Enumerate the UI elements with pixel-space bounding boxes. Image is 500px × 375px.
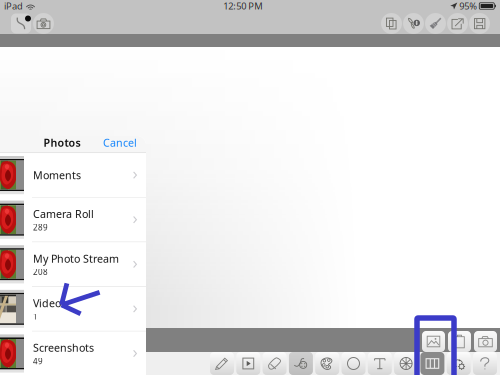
button[interactable]: Help — [473, 352, 497, 375]
button[interactable]: Palette — [315, 352, 339, 375]
staticText: 289 — [33, 222, 48, 233]
button[interactable]: Moments — [0, 153, 146, 197]
button[interactable]: Camera — [33, 13, 54, 34]
button[interactable]: Duplicate — [381, 13, 402, 34]
button[interactable]: Share — [447, 13, 468, 34]
staticText: 1 — [33, 311, 38, 322]
staticText: 95% — [459, 0, 477, 12]
button[interactable]: Lasso — [289, 352, 313, 375]
button[interactable]: Shape — [236, 352, 260, 375]
staticText: Moments — [33, 168, 81, 182]
button[interactable]: Take photo — [474, 331, 497, 352]
button[interactable]: Videos — [0, 287, 146, 331]
button[interactable]: Brush — [425, 13, 446, 34]
button[interactable]: Insert image — [420, 352, 444, 375]
staticText: Screenshots — [33, 341, 94, 355]
staticText: Videos — [33, 296, 66, 310]
button[interactable]: Add pin — [403, 13, 424, 34]
button[interactable]: My Photo Stream — [0, 242, 146, 286]
staticText: 49 — [33, 356, 43, 366]
button[interactable]: Paste — [448, 331, 471, 352]
staticText: iPad — [4, 0, 23, 12]
button[interactable]: Photo settings — [447, 352, 471, 375]
button[interactable]: Undo — [11, 13, 31, 33]
button[interactable]: Pencil — [210, 352, 234, 375]
staticText: 208 — [33, 267, 48, 277]
button[interactable]: Photo library — [422, 331, 445, 352]
button[interactable]: Screenshots — [0, 331, 146, 375]
button[interactable]: Text — [368, 352, 392, 375]
button[interactable]: Ellipse — [341, 352, 365, 375]
staticText: My Photo Stream — [33, 251, 119, 266]
staticText: Photos — [43, 135, 80, 150]
button[interactable]: Camera Roll — [0, 198, 146, 242]
staticText: Camera Roll — [33, 207, 94, 221]
button[interactable]: Eraser — [263, 352, 287, 375]
staticText: Cancel — [103, 135, 137, 150]
staticText: 12:50 PM — [223, 0, 262, 12]
button[interactable]: Cancel — [103, 131, 146, 154]
button[interactable]: Color wheel — [394, 352, 418, 375]
button[interactable]: Save — [469, 13, 490, 34]
